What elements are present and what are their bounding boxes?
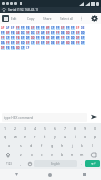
staticText: FF [36,26,40,30]
button[interactable]: 3 [20,124,30,132]
staticText: FF [61,36,65,40]
button[interactable]: 6 [50,124,60,132]
staticText: o [84,134,87,139]
staticText: EF [76,26,80,30]
button[interactable]: y [50,132,60,141]
button[interactable]: 0 [90,124,100,132]
button[interactable]: r [30,132,40,141]
button[interactable]: p [90,132,100,141]
button[interactable]: z [15,150,26,159]
staticText: DF [46,41,50,45]
staticText: e [24,134,27,139]
staticText: type HEX command [4,116,34,120]
staticText: DC [21,31,25,35]
button[interactable]: Shift [1,150,15,159]
staticText: Select all [60,17,74,21]
staticText: 3 [24,126,27,131]
button[interactable]: Backspace [87,150,100,159]
staticText: b [61,152,64,157]
button[interactable]: 7 [60,124,70,132]
button[interactable]: d [26,141,37,150]
button[interactable]: 2 [10,124,20,132]
staticText: DF [1,46,5,50]
button[interactable]: Share [41,15,54,23]
staticText: ED [21,41,25,45]
staticText: CF [71,31,75,35]
button[interactable]: k [77,141,87,150]
button[interactable]: m [77,150,87,159]
staticText: DE [51,41,55,45]
staticText: ?123 [6,162,12,166]
staticText: EF [31,26,35,30]
button[interactable]: q [1,132,10,141]
button[interactable]: f [37,141,47,150]
staticText: AF [6,26,10,30]
staticText: DF [51,36,55,40]
button[interactable]: Edit [2,15,9,22]
staticText: DE [71,41,75,45]
button[interactable]: Copy [25,15,37,23]
button[interactable]: 4 [30,124,40,132]
button[interactable]: Enter [85,160,100,167]
staticText: l [92,143,93,148]
button[interactable]: Home [33,169,67,180]
staticText: DF [26,36,30,40]
staticText: 7 [64,126,67,131]
button[interactable]: s [15,141,26,150]
staticText: FE [26,26,30,30]
button[interactable]: i [70,132,80,141]
button[interactable]: n [67,150,77,159]
button[interactable]: Settings [90,14,99,23]
button[interactable]: b [57,150,67,159]
staticText: FE [6,46,10,50]
button[interactable]: g [47,141,57,150]
button[interactable]: j [67,141,77,150]
staticText: DD [71,36,75,40]
button[interactable]: More options [78,15,85,22]
button[interactable]: 9 [80,124,90,132]
button[interactable]: 8 [70,124,80,132]
button[interactable]: o [80,132,90,141]
staticText: EF [81,36,85,40]
staticText: h [61,143,64,148]
staticText: Edit [11,17,17,21]
button[interactable]: v [47,150,57,159]
button[interactable]: ?123 [1,159,16,168]
button[interactable]: 1 [1,124,10,132]
button[interactable]: t [40,132,50,141]
button[interactable]: Back [0,169,33,180]
staticText: CF [51,26,55,30]
button[interactable]: Emoji [25,159,34,168]
staticText: FF [76,41,80,45]
staticText: AB [16,31,20,35]
button[interactable]: Recent apps [67,169,101,180]
button[interactable]: type HEX command [2,113,87,122]
staticText: EF [51,31,55,35]
staticText: FF [41,26,45,30]
button[interactable]: Send [89,112,99,122]
button[interactable]: e [20,132,30,141]
button[interactable]: c [37,150,47,159]
staticText: DD [81,31,85,35]
staticText: EF [11,41,15,45]
button[interactable]: a [4,141,15,150]
button[interactable]: x [26,150,37,159]
staticText: 5 [44,126,47,131]
button[interactable]: , [16,159,25,168]
staticText: k [81,143,83,148]
staticText: EF [56,41,60,45]
button[interactable]: Select all [58,15,76,23]
button[interactable]: u [60,132,70,141]
button[interactable]: h [57,141,67,150]
button[interactable]: w [10,132,20,141]
staticText: r [34,134,36,139]
button[interactable]: English [34,160,77,167]
button[interactable]: 5 [40,124,50,132]
staticText: 0F [46,26,50,30]
staticText: FF [21,26,25,30]
staticText: 8 [74,126,77,131]
button[interactable]: l [87,141,97,150]
staticText: Share [43,17,52,21]
staticText: a [8,143,11,148]
